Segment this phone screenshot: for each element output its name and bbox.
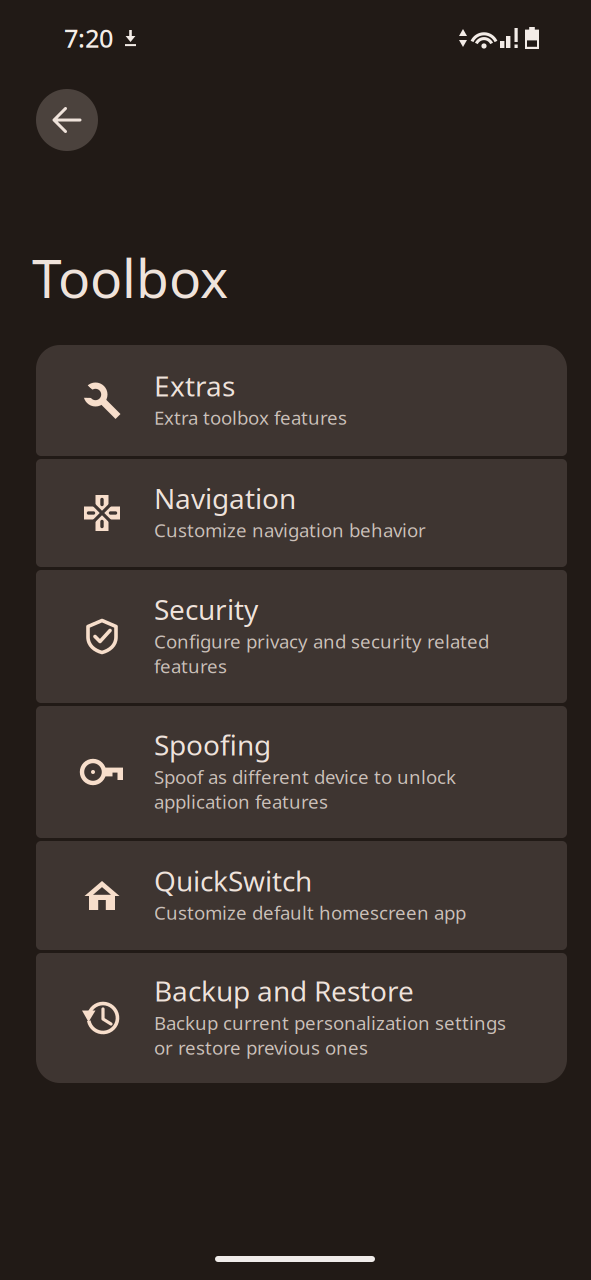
staticText: Extras xyxy=(154,367,235,404)
staticText: Extra toolbox features xyxy=(154,405,347,430)
staticText: Spoof as different device to unlock appl… xyxy=(154,764,456,814)
button[interactable]: Back xyxy=(36,89,98,151)
button[interactable]: QuickSwitch xyxy=(36,841,567,950)
button[interactable]: Spoofing xyxy=(36,706,567,838)
staticText: Security xyxy=(154,591,258,628)
button[interactable]: Security xyxy=(36,570,567,703)
staticText: Backup and Restore xyxy=(154,972,414,1009)
staticText: Customize navigation behavior xyxy=(154,518,426,542)
staticText: Toolbox xyxy=(32,242,228,313)
staticText: 7:20 xyxy=(64,21,113,55)
staticText: Spoofing xyxy=(154,726,271,763)
staticText: Customize default homescreen app xyxy=(154,900,466,925)
staticText: Configure privacy and security related f… xyxy=(154,629,489,678)
button[interactable]: Extras xyxy=(36,345,567,456)
button[interactable]: Backup and Restore xyxy=(36,953,567,1083)
staticText: QuickSwitch xyxy=(154,862,312,899)
staticText: Backup current personalization settings … xyxy=(154,1010,506,1060)
staticText: Navigation xyxy=(154,479,296,517)
button[interactable]: Navigation xyxy=(36,459,567,567)
